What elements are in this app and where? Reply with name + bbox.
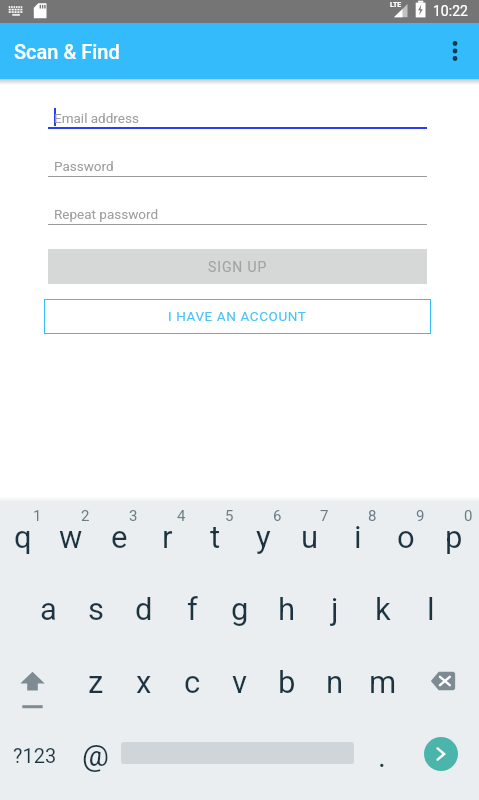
staticText: Scan & Find [14,40,120,63]
button[interactable]: e [96,508,144,575]
staticText: x [136,664,152,700]
button[interactable]: p [431,508,479,575]
button[interactable]: w [48,508,96,575]
staticText: n [326,664,344,700]
staticText: o [397,519,415,555]
staticText: SIGN UP [208,259,268,275]
button[interactable]: SIGN UP [48,249,427,284]
button[interactable]: @ [72,721,120,800]
button[interactable]: m [359,648,407,721]
button[interactable]: I HAVE AN ACCOUNT [44,299,431,334]
button[interactable]: c [168,648,216,721]
staticText: 7 [320,507,329,525]
button[interactable]: z [72,648,120,721]
button[interactable]: q [0,508,48,575]
staticText: 5 [225,507,234,525]
button[interactable]: y [240,508,288,575]
button[interactable]: u [287,508,335,575]
button[interactable]: a [24,575,72,648]
staticText: z [88,664,104,700]
button[interactable]: Email address [48,102,427,129]
staticText: 3 [129,507,138,525]
staticText: ?123 [13,744,57,767]
staticText: I HAVE AN ACCOUNT [168,308,307,324]
staticText: t [210,519,221,555]
button[interactable]: . [354,721,402,800]
staticText: LTE [390,1,402,9]
staticText: 0 [464,507,473,525]
staticText: Email address [54,110,139,126]
staticText: p [445,519,463,555]
button[interactable]: v [216,648,264,721]
staticText: j [331,591,339,627]
button[interactable]: h [263,575,311,648]
staticText: k [375,591,391,627]
staticText: @ [82,738,109,773]
staticText: i [354,519,362,555]
button[interactable]: Backspace [407,648,479,721]
staticText: Repeat password [54,206,159,222]
staticText: u [301,519,319,555]
button[interactable]: ?123 [0,721,72,800]
button[interactable]: f [168,575,216,648]
staticText: Password [54,158,114,174]
button[interactable]: Shift [0,648,72,721]
button[interactable]: b [263,648,311,721]
staticText: m [369,664,397,700]
button[interactable]: More options [431,23,479,79]
button[interactable]: d [120,575,168,648]
button[interactable]: j [311,575,359,648]
staticText: l [427,591,435,627]
staticText: e [111,519,128,555]
button[interactable]: r [144,508,192,575]
button[interactable]: o [383,508,431,575]
staticText: . [378,739,386,774]
staticText: 8 [368,507,377,525]
button[interactable]: k [359,575,407,648]
staticText: 6 [273,507,282,525]
staticText: w [59,519,83,555]
staticText: f [187,591,198,627]
button[interactable]: Enter [424,737,458,771]
staticText: c [184,664,201,700]
staticText: q [14,519,32,555]
button[interactable]: Space [120,721,355,800]
staticText: s [88,591,104,627]
staticText: 4 [177,507,186,525]
button[interactable]: Password [48,150,427,177]
staticText: a [40,591,57,627]
staticText: y [256,519,271,555]
staticText: 1 [33,507,42,525]
button[interactable]: g [216,575,264,648]
button[interactable]: Repeat password [48,198,427,225]
staticText: d [135,591,153,627]
staticText: 9 [416,507,425,525]
button[interactable]: i [335,508,383,575]
staticText: h [278,591,296,627]
button[interactable]: l [407,575,455,648]
button[interactable]: t [192,508,240,575]
button[interactable]: s [72,575,120,648]
button[interactable]: n [311,648,359,721]
staticText: b [278,664,296,700]
staticText: g [231,591,249,627]
staticText: 2 [81,507,90,525]
staticText: 10:22 [433,3,468,19]
staticText: r [162,519,173,555]
button[interactable]: x [120,648,168,721]
staticText: v [232,664,248,700]
